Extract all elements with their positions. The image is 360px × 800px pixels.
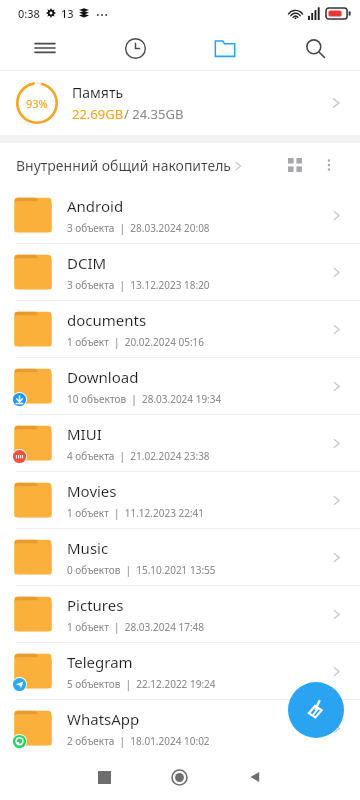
staticText: MIUI <box>67 424 102 444</box>
button[interactable]: Android <box>0 187 360 243</box>
staticText: Android <box>67 196 124 216</box>
staticText: Movies <box>67 481 117 501</box>
button[interactable]: Внутренний общий накопитель <box>16 156 245 175</box>
staticText: WhatsApp <box>67 709 140 729</box>
button[interactable]: Search <box>270 26 360 70</box>
staticText: 22.69GB <box>72 105 124 123</box>
button[interactable]: Home <box>142 754 217 800</box>
button[interactable]: Movies <box>0 472 360 528</box>
staticText: 5 объектов | 22.12.2022 19:24 <box>67 677 216 691</box>
staticText: DCIM <box>67 253 107 273</box>
staticText: 0 объектов | 15.10.2021 13:55 <box>67 563 216 577</box>
button[interactable]: Clean up storage <box>288 682 344 738</box>
staticText: Telegram <box>67 652 133 672</box>
button[interactable]: Music <box>0 529 360 585</box>
button[interactable]: Recents <box>67 754 142 800</box>
button[interactable]: documents <box>0 301 360 357</box>
staticText: 2 объекта | 18.01.2024 10:02 <box>67 734 210 748</box>
button[interactable]: Telegram <box>0 643 360 699</box>
staticText: Внутренний общий накопитель <box>16 156 231 175</box>
staticText: 13 <box>61 6 74 21</box>
button[interactable]: WhatsApp <box>0 700 360 756</box>
staticText: Music <box>67 538 109 558</box>
staticText: 1 объект | 28.03.2024 17:48 <box>67 620 205 634</box>
button[interactable]: Download <box>0 358 360 414</box>
staticText: 10 объектов | 28.03.2024 19:34 <box>67 392 222 406</box>
button[interactable]: Files <box>180 26 270 70</box>
staticText: Download <box>67 367 139 387</box>
staticText: 93% <box>26 96 48 111</box>
button[interactable]: MIUI <box>0 415 360 471</box>
staticText: 0:38 <box>18 6 40 21</box>
button[interactable]: Pictures <box>0 586 360 642</box>
button[interactable]: Grid view <box>278 148 312 182</box>
button[interactable]: Menu <box>0 26 90 70</box>
staticText: 1 объект | 11.12.2023 22:41 <box>67 506 205 520</box>
staticText: 4 объекта | 21.02.2024 23:38 <box>67 449 210 463</box>
staticText: 3 объекта | 13.12.2023 18:20 <box>67 278 210 292</box>
button[interactable]: Recent <box>90 26 180 70</box>
staticText: Pictures <box>67 595 124 615</box>
staticText: 3 объекта | 28.03.2024 20:08 <box>67 221 210 235</box>
button[interactable]: Back <box>217 754 292 800</box>
staticText: / 24.35GB <box>124 105 184 123</box>
staticText: documents <box>67 310 147 330</box>
staticText: Память <box>72 83 124 102</box>
button[interactable]: DCIM <box>0 244 360 300</box>
staticText: 1 объект | 20.02.2024 05:16 <box>67 335 205 349</box>
button[interactable]: More options <box>312 148 346 182</box>
button[interactable]: 93% <box>0 71 360 135</box>
